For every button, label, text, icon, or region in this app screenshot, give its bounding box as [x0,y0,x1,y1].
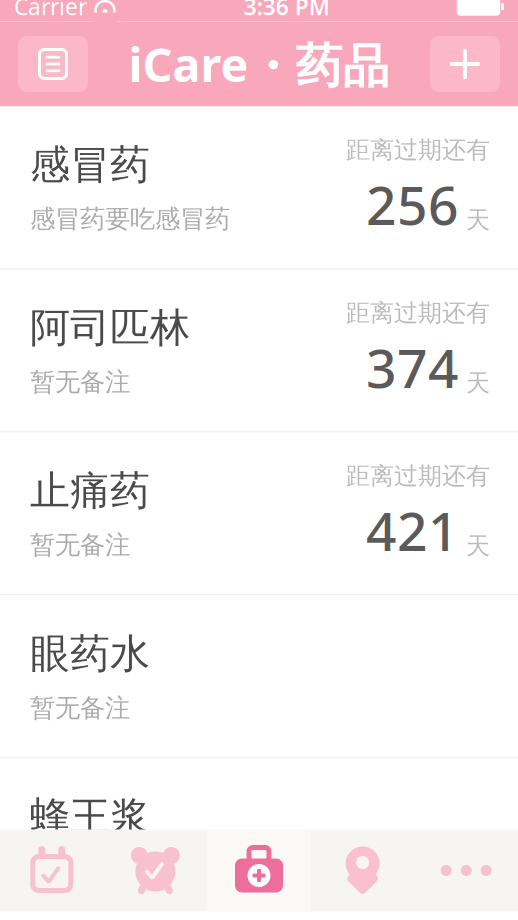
staticText: 蜂王浆 [30,792,150,841]
button[interactable]: Add [430,36,500,92]
staticText: 3:36 PM [244,0,330,21]
button[interactable]: 蜂王浆 [0,758,518,920]
staticText: 距离过期还有 [346,298,490,328]
button[interactable]: 感冒药 [0,106,518,268]
staticText: 421 [366,495,459,566]
staticText: 暂无备注 [30,366,130,398]
button[interactable]: List [18,36,88,92]
staticText: 374 [366,332,459,403]
staticText: 256 [366,169,459,240]
button[interactable]: Calendar [0,829,104,911]
staticText: 暂无备注 [30,529,130,561]
staticText: 止痛药 [30,466,150,515]
staticText: 暂无备注 [30,692,130,724]
button[interactable]: 阿司匹林 [0,269,518,431]
staticText: 眼药水 [30,629,150,678]
button[interactable]: Reminders [104,829,207,911]
staticText: iCare・药品 [128,33,389,95]
staticText: 阿司匹林 [30,303,190,352]
staticText: 暂无备注 [30,855,130,887]
staticText: 距离过期还有 [346,461,490,491]
staticText: Carrier [14,0,87,21]
button[interactable]: Places [311,829,414,911]
button[interactable]: 眼药水 [0,595,518,757]
staticText: 感冒药要吃感冒药 [30,203,230,235]
staticText: 距离过期还有 [346,135,490,165]
staticText: 天 [466,531,490,561]
staticText: 天 [466,368,490,398]
button[interactable]: Medicine [207,829,311,911]
staticText: 天 [466,205,490,235]
staticText: 感冒药 [30,140,150,189]
button[interactable]: More [414,829,518,911]
button[interactable]: 止痛药 [0,432,518,594]
